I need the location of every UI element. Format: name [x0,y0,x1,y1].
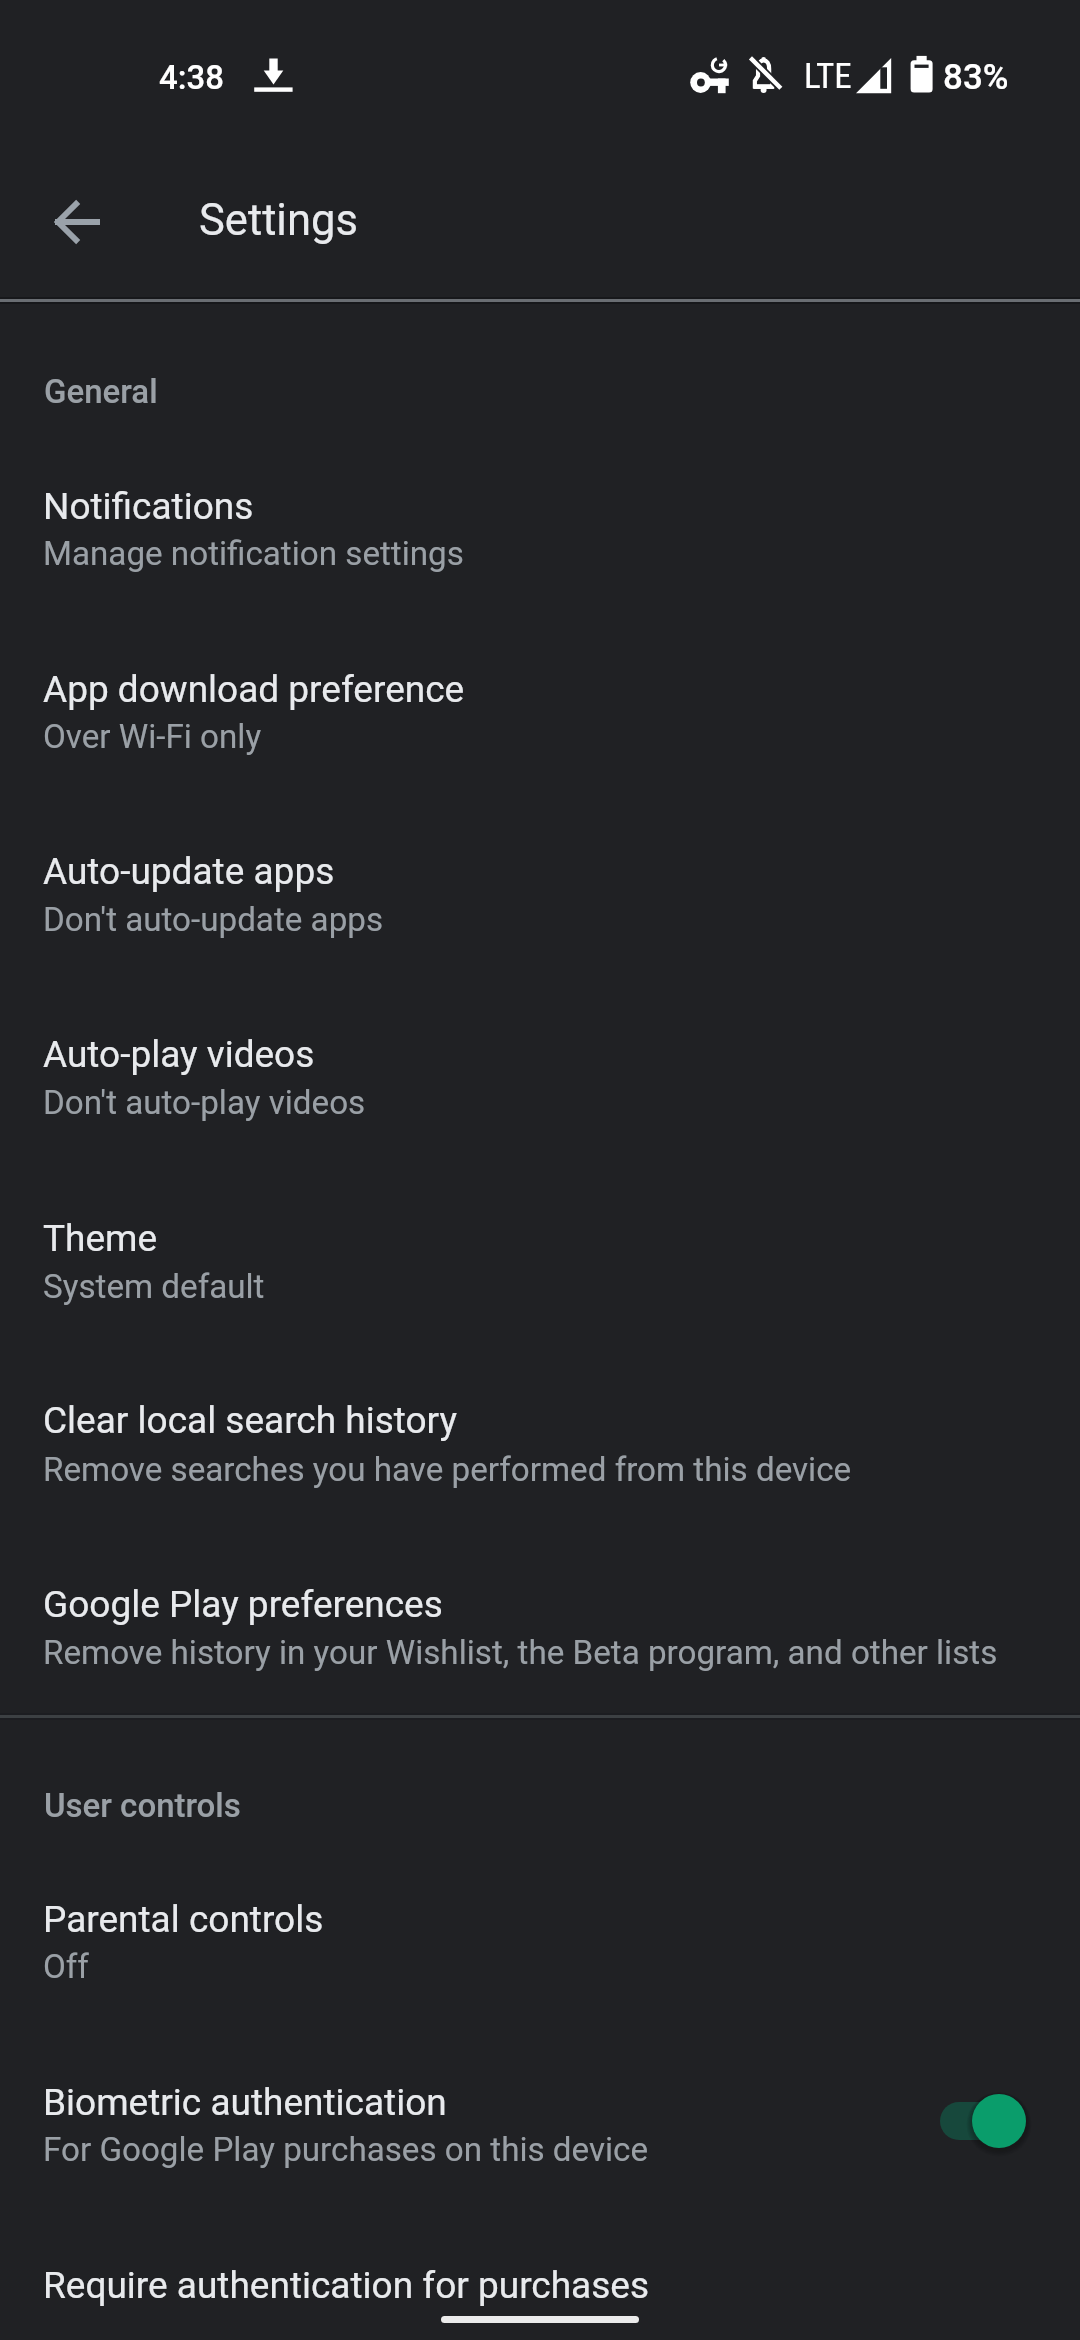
staticText: 4:38 [159,58,225,97]
button[interactable]: Biometric authentication toggle [914,2079,1052,2163]
staticText: Auto-update apps [43,850,335,893]
button[interactable]: Auto-update apps [0,813,1080,949]
staticText: Remove history in your Wishlist, the Bet… [43,1633,998,1672]
staticText: Require authentication for purchases [43,2264,650,2307]
button[interactable]: App download preference [0,630,1080,766]
staticText: Don't auto-play videos [43,1083,366,1122]
button[interactable]: Google Play preferences [0,1545,1080,1681]
button[interactable]: Biometric authentication [0,2043,1080,2179]
staticText: Off [43,1947,89,1986]
button[interactable]: Auto-play videos [0,996,1080,1132]
staticText: Settings [199,195,358,246]
staticText: Manage notification settings [43,534,464,573]
button[interactable]: Clear local search history [0,1362,1080,1498]
button[interactable]: Back [22,156,132,288]
staticText: For Google Play purchases on this device [43,2130,649,2169]
staticText: Theme [43,1217,158,1260]
staticText: Don't auto-update apps [43,900,384,939]
staticText: General [44,372,158,411]
button[interactable]: Parental controls [0,1861,1080,1997]
staticText: Remove searches you have performed from … [43,1450,852,1489]
staticText: Parental controls [43,1898,324,1941]
staticText: App download preference [43,668,465,711]
staticText: Notifications [43,485,254,528]
staticText: Biometric authentication [43,2081,447,2124]
button[interactable]: Require authentication for purchases [0,2227,1080,2340]
staticText: Auto-play videos [43,1033,315,1076]
staticText: Google Play preferences [43,1583,443,1626]
button[interactable]: Notifications [0,447,1080,583]
staticText: LTE [804,56,852,97]
button[interactable]: Theme [0,1179,1080,1315]
staticText: User controls [44,1786,241,1825]
staticText: 83% [943,57,1009,98]
staticText: System default [43,1267,265,1306]
staticText: Over Wi-Fi only [43,717,262,756]
staticText: Clear local search history [43,1399,457,1442]
